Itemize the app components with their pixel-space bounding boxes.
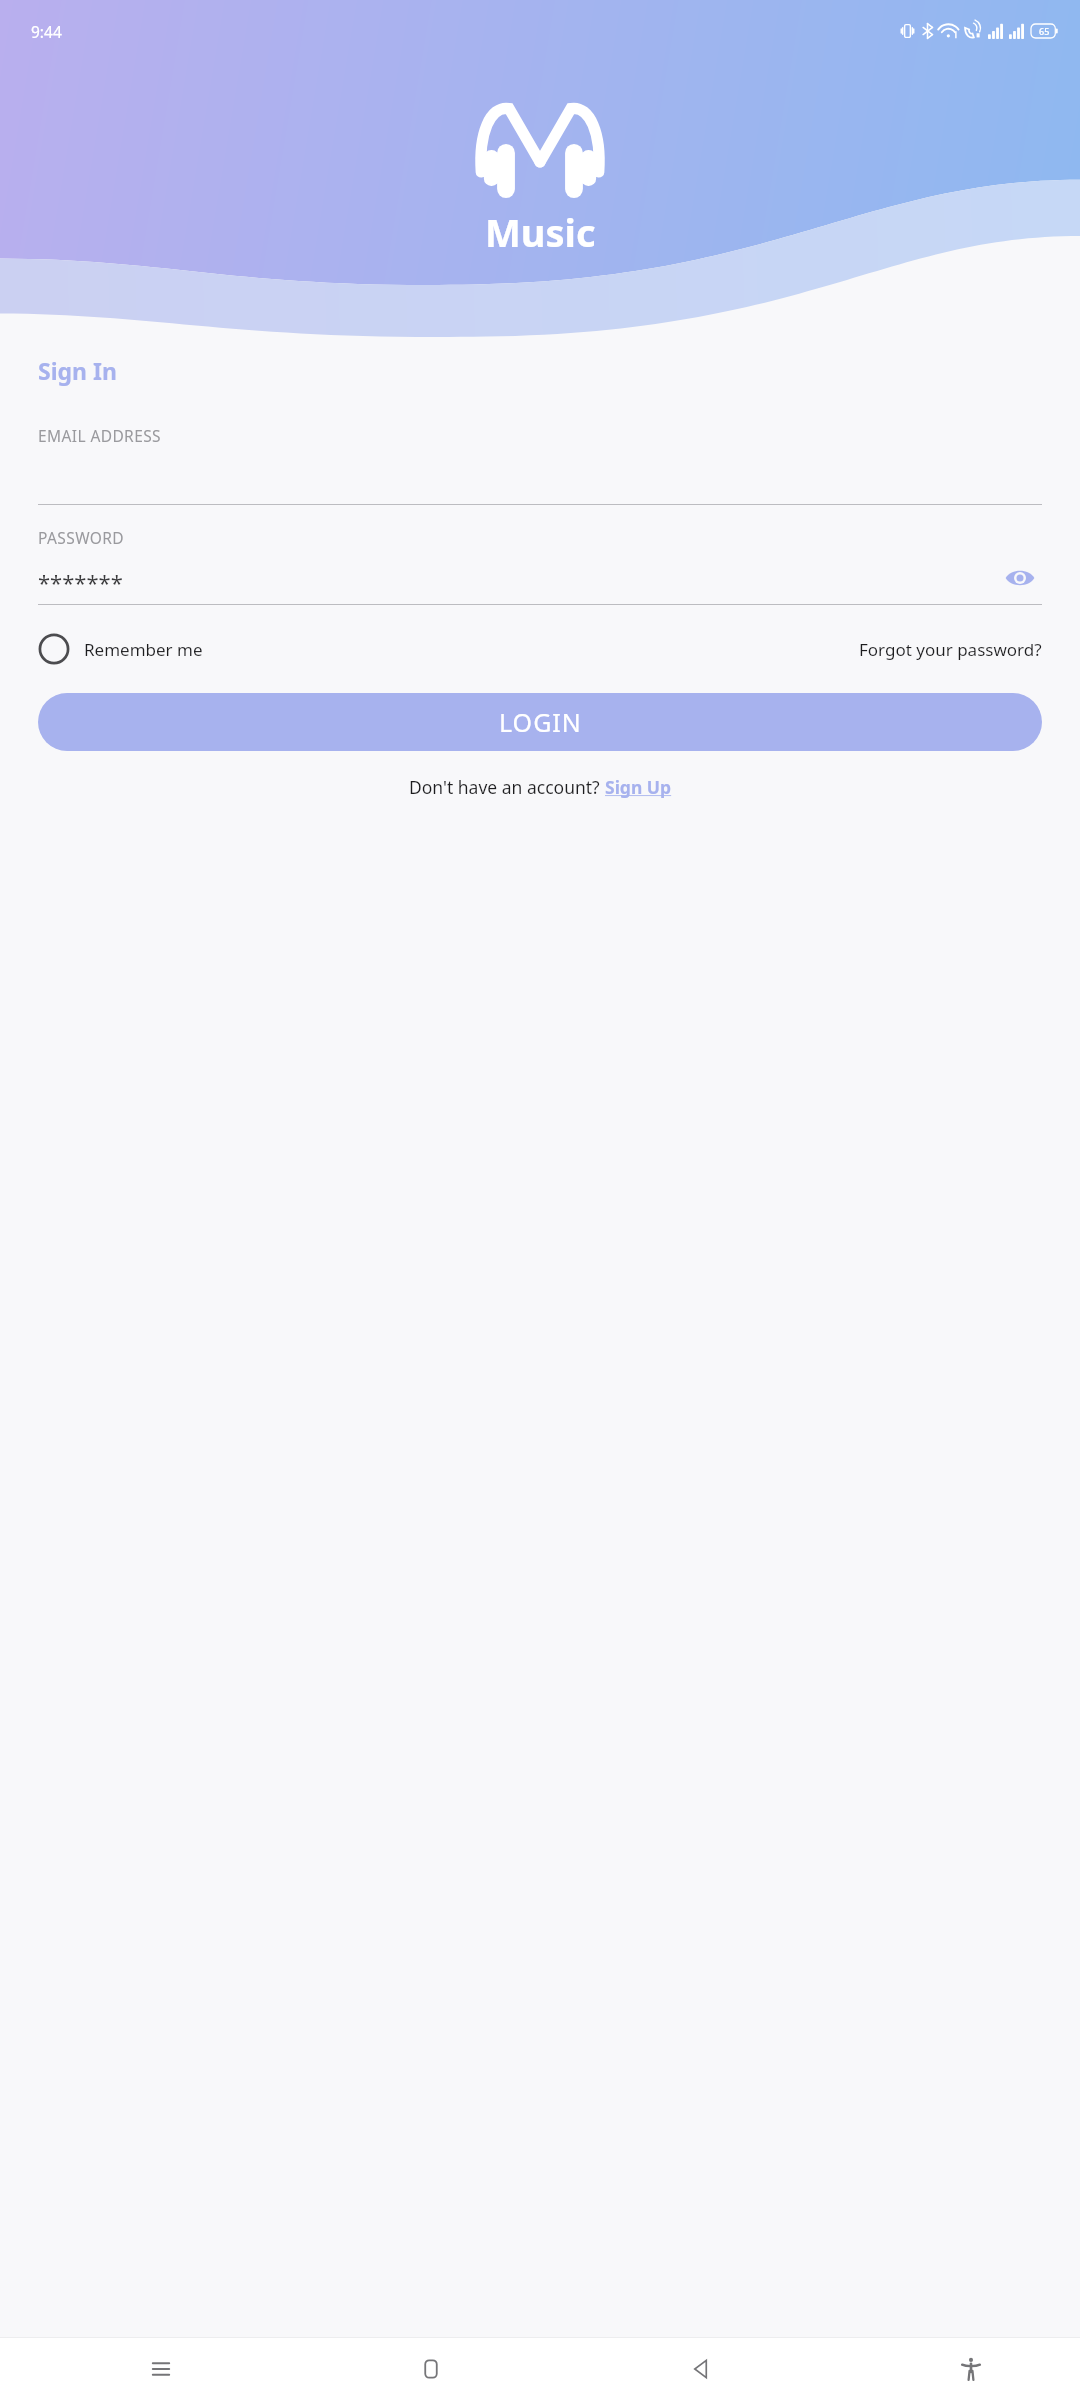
button[interactable]: Show password: [998, 558, 1042, 598]
button[interactable]: Back: [674, 2342, 728, 2396]
staticText: Sign In: [38, 355, 117, 386]
button[interactable]: Home: [404, 2342, 458, 2396]
staticText: PASSWORD: [38, 527, 125, 548]
button[interactable]: LOGIN: [38, 693, 1042, 751]
staticText: 65: [1039, 25, 1050, 37]
button[interactable]: Forgot your password?: [859, 632, 1042, 667]
staticText: Forgot your password?: [859, 638, 1042, 661]
button[interactable]: Accessibility: [944, 2342, 998, 2396]
button[interactable]: Sign Up: [605, 775, 672, 799]
staticText: Remember me: [84, 638, 203, 661]
staticText: Music: [485, 206, 596, 258]
staticText: Don't have an account?: [409, 775, 605, 799]
staticText: *******: [38, 567, 123, 597]
staticText: EMAIL ADDRESS: [38, 425, 162, 446]
staticText: 9:44: [31, 21, 62, 42]
staticText: Sign Up: [605, 775, 672, 799]
button[interactable]: Remember me: [38, 627, 203, 671]
staticText: LOGIN: [499, 705, 582, 739]
button[interactable]: Recent apps: [134, 2342, 188, 2396]
